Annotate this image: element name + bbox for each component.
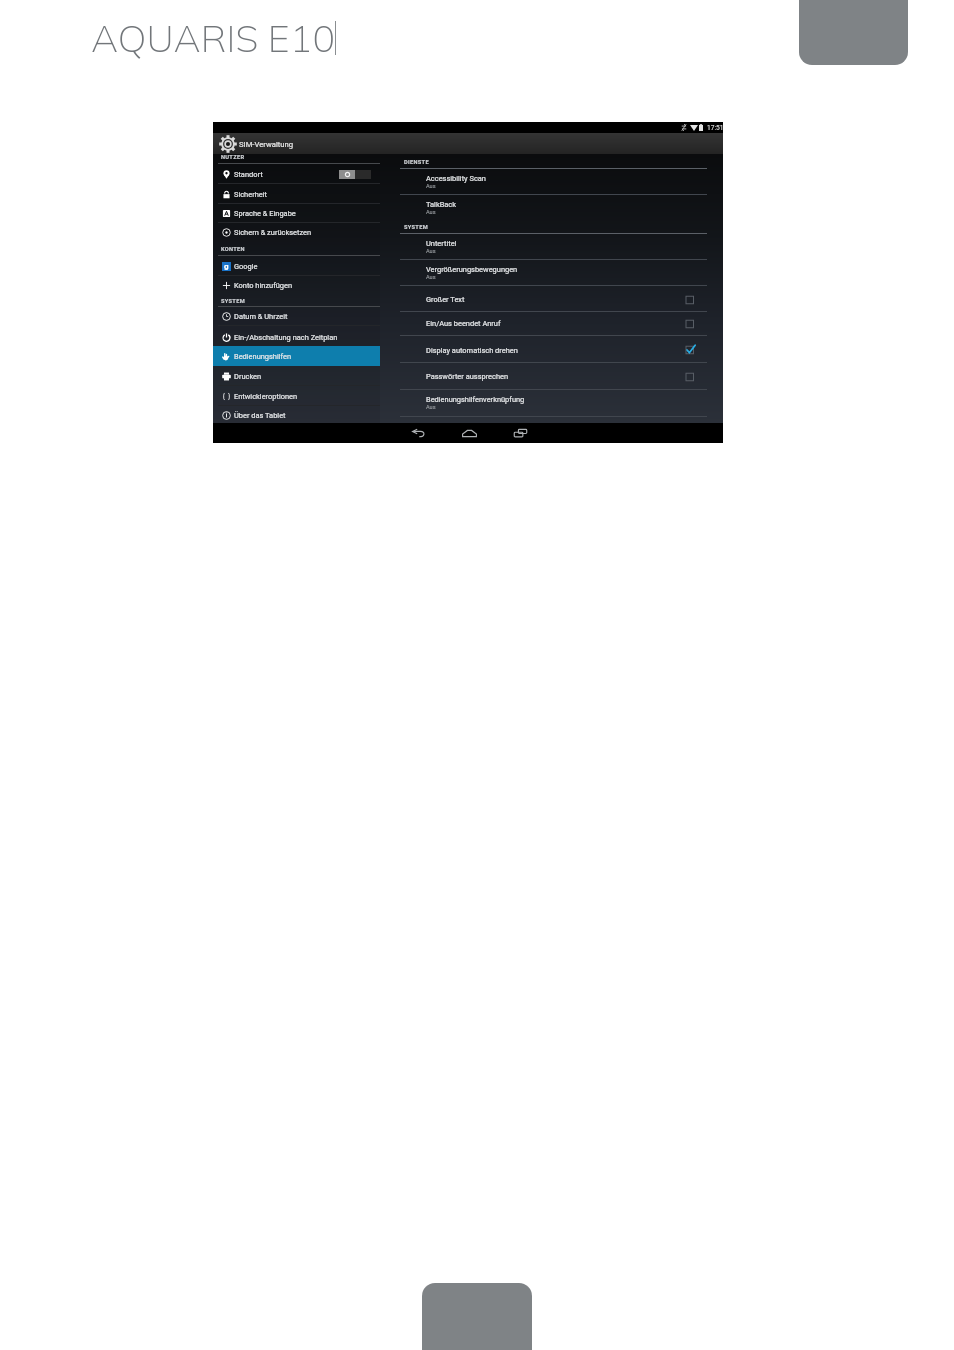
- staticText: Sprache & Eingabe: [234, 209, 296, 218]
- staticText: Ein-/Abschaltung nach Zeitplan: [234, 333, 338, 342]
- staticText: DIENSTE: [404, 159, 429, 166]
- staticText: Standort: [234, 170, 263, 179]
- staticText: Konto hinzufügen: [234, 281, 293, 290]
- staticText: Aus: [426, 183, 436, 190]
- staticText: Drucken: [234, 372, 262, 381]
- staticText: KONTEN: [221, 246, 245, 253]
- staticText: Display automatisch drehen: [426, 346, 518, 355]
- button[interactable]: Standort: [213, 164, 380, 184]
- other: Settings: [219, 135, 237, 153]
- staticText: g: [224, 262, 229, 271]
- staticText: Bedienungshilfen: [234, 352, 292, 361]
- staticText: Sichern & zurücksetzen: [234, 228, 312, 237]
- staticText: Aus: [426, 248, 436, 255]
- button[interactable]: Sicherheit: [213, 184, 380, 204]
- staticText: Untertitel: [426, 239, 457, 248]
- button[interactable]: Ein-/Abschaltung nach Zeitplan: [213, 327, 380, 347]
- staticText: Aus: [426, 404, 436, 411]
- staticText: Datum & Uhrzeit: [234, 312, 288, 321]
- staticText: SYSTEM: [221, 298, 245, 305]
- button[interactable]: Bedienungshilfen: [213, 346, 380, 366]
- button[interactable]: Sprache & Eingabe: [213, 203, 380, 223]
- button[interactable]: g: [213, 256, 380, 276]
- staticText: Aus: [426, 209, 436, 216]
- button[interactable]: Datum & Uhrzeit: [213, 306, 380, 326]
- button[interactable]: Sichern & zurücksetzen: [213, 222, 380, 242]
- button[interactable]: Display automatisch drehen: [380, 337, 723, 363]
- button[interactable]: Back: [405, 424, 431, 442]
- button[interactable]: TalkBack: [380, 195, 723, 221]
- button[interactable]: Entwickleroptionen: [213, 386, 380, 406]
- staticText: Sicherheit: [234, 190, 267, 199]
- button[interactable]: Ein/Aus beendet Anruf: [380, 311, 723, 336]
- staticText: Ein/Aus beendet Anruf: [426, 319, 501, 328]
- staticText: Vergrößerungsbewegungen: [426, 265, 518, 274]
- staticText: Entwickleroptionen: [234, 392, 298, 401]
- staticText: TalkBack: [426, 200, 456, 209]
- button[interactable]: Bedienungshilfenverknüpfung: [380, 390, 723, 417]
- staticText: SIM-Verwaltung: [239, 140, 294, 149]
- staticText: Bedienungshilfenverknüpfung: [426, 395, 525, 404]
- staticText: SYSTEM: [404, 224, 428, 231]
- button[interactable]: Accessibility Scan: [380, 169, 723, 195]
- staticText: Über das Tablet: [234, 411, 286, 420]
- button[interactable]: Drucken: [213, 366, 380, 386]
- button[interactable]: Großer Text: [380, 287, 723, 312]
- staticText: NUTZER: [221, 154, 245, 161]
- staticText: Passwörter aussprechen: [426, 372, 509, 381]
- button[interactable]: Untertitel: [380, 234, 723, 260]
- staticText: Aus: [426, 274, 436, 281]
- staticText: 17:51: [707, 124, 724, 132]
- staticText: Google: [234, 262, 258, 271]
- button[interactable]: Konto hinzufügen: [213, 275, 380, 295]
- button[interactable]: Über das Tablet: [213, 405, 380, 425]
- button[interactable]: Vergrößerungsbewegungen: [380, 260, 723, 286]
- button[interactable]: Recent apps: [507, 424, 533, 442]
- button[interactable]: Passwörter aussprechen: [380, 363, 723, 390]
- button[interactable]: Home: [456, 424, 482, 442]
- staticText: Großer Text: [426, 295, 465, 304]
- staticText: AQUARIS E10: [91, 14, 336, 61]
- staticText: Accessibility Scan: [426, 174, 486, 183]
